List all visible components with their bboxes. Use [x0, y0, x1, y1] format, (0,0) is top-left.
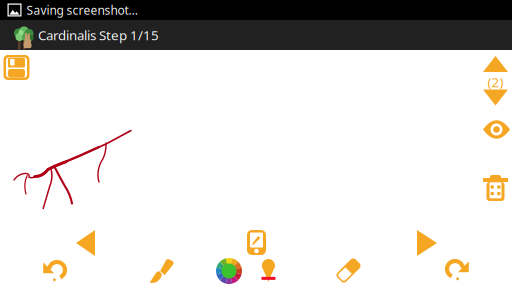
button[interactable]: Redo: [444, 258, 471, 282]
staticText: Cardinalis Step 1/15: [38, 26, 159, 44]
button[interactable]: Tool settings: [247, 230, 266, 255]
button[interactable]: Move up: [483, 56, 508, 72]
button[interactable]: Marker: [261, 258, 275, 282]
button[interactable]: Delete: [483, 175, 508, 201]
button[interactable]: Move down: [483, 89, 508, 105]
button[interactable]: Eraser: [336, 258, 361, 283]
button[interactable]: Save: [3, 55, 29, 80]
button[interactable]: Preview: [483, 120, 510, 139]
button[interactable]: Previous step: [76, 230, 95, 256]
button[interactable]: Brush: [149, 257, 175, 283]
button[interactable]: Undo: [41, 259, 68, 283]
staticText: Saving screenshot…: [26, 2, 137, 18]
staticText: (2): [487, 73, 503, 91]
button[interactable]: Color: [216, 258, 242, 284]
button[interactable]: Next step: [417, 230, 437, 256]
